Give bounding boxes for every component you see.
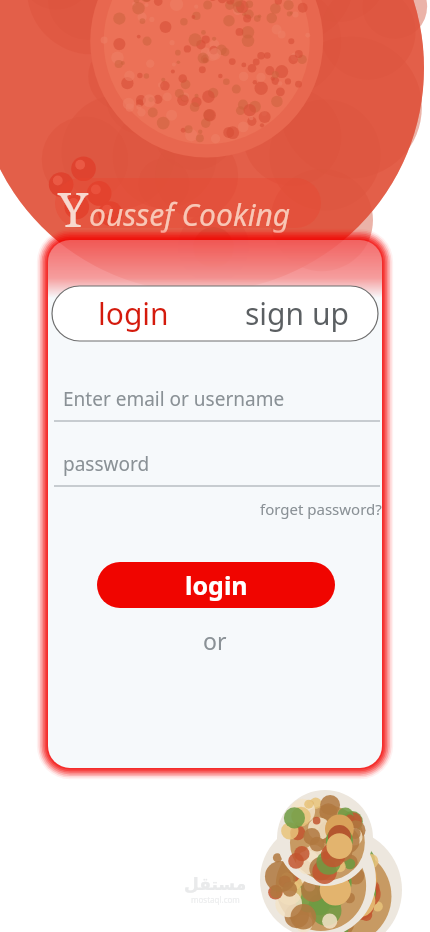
staticText: forget password? [260,499,382,519]
staticText: oussef Cooking [89,194,291,235]
button[interactable]: login [52,286,215,341]
staticText: password [63,451,150,477]
staticText: Enter email or username [63,386,285,412]
staticText: login [185,568,248,602]
button[interactable]: sign up [215,286,378,341]
button[interactable]: login [97,562,335,608]
staticText: login [98,293,169,334]
staticText: or [203,625,227,656]
staticText: Y [58,176,89,241]
staticText: mostaql.com [191,894,240,905]
button[interactable]: forget password? [238,496,382,522]
staticText: sign up [245,293,349,334]
staticText: مستقل [184,874,247,894]
button[interactable]: Enter email or username [54,384,380,422]
button[interactable]: password [54,449,380,487]
